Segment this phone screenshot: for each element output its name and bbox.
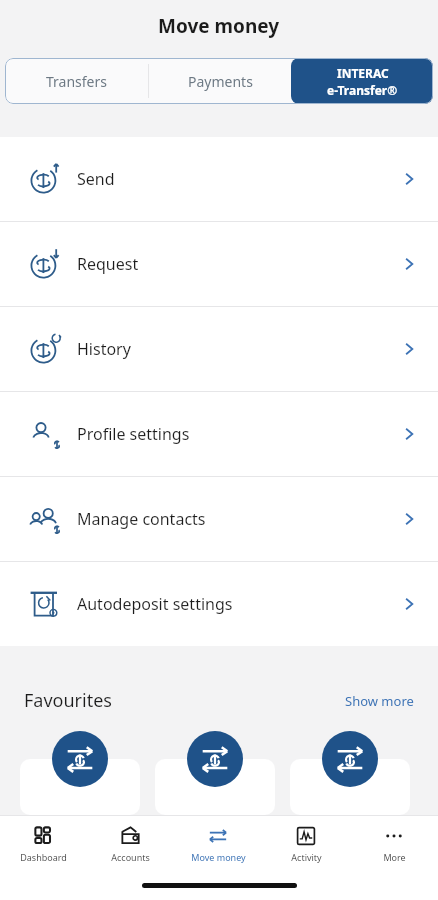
staticText: Profile settings — [77, 423, 190, 445]
button[interactable]: Autodeposit settings — [0, 562, 438, 646]
button[interactable]: Payments — [149, 58, 291, 104]
staticText: Accounts — [111, 851, 150, 863]
button[interactable]: More — [350, 816, 438, 870]
staticText: Show more — [345, 692, 414, 710]
button[interactable]: Manage contacts — [0, 477, 438, 561]
staticText: Manage contacts — [77, 508, 206, 530]
button[interactable]: INTERAC — [291, 58, 433, 104]
staticText: Dashboard — [20, 851, 67, 863]
button[interactable]: Dashboard — [0, 816, 87, 870]
button[interactable] — [20, 759, 140, 815]
staticText: Move money — [191, 851, 246, 863]
button[interactable]: Activity — [262, 816, 350, 870]
staticText: e-Transfer® — [327, 82, 398, 98]
button[interactable]: Show more — [345, 692, 414, 710]
staticText: Payments — [188, 72, 253, 91]
staticText: Autodeposit settings — [77, 593, 233, 615]
button[interactable]: Transfers — [5, 58, 148, 104]
button[interactable] — [155, 759, 275, 815]
staticText: Activity — [291, 851, 322, 863]
button[interactable]: Move money — [174, 816, 262, 870]
button[interactable]: History — [0, 307, 438, 391]
staticText: More — [383, 851, 406, 863]
staticText: INTERAC — [337, 65, 389, 81]
button[interactable]: Profile settings — [0, 392, 438, 476]
staticText: Transfers — [46, 72, 107, 91]
staticText: Send — [77, 168, 115, 190]
staticText: History — [77, 338, 131, 360]
button[interactable] — [290, 759, 410, 815]
button[interactable]: Request — [0, 222, 438, 306]
staticText: Favourites — [24, 688, 112, 713]
staticText: Request — [77, 253, 139, 275]
button[interactable]: Accounts — [87, 816, 174, 870]
button[interactable]: Send — [0, 137, 438, 221]
staticText: Move money — [158, 13, 280, 39]
